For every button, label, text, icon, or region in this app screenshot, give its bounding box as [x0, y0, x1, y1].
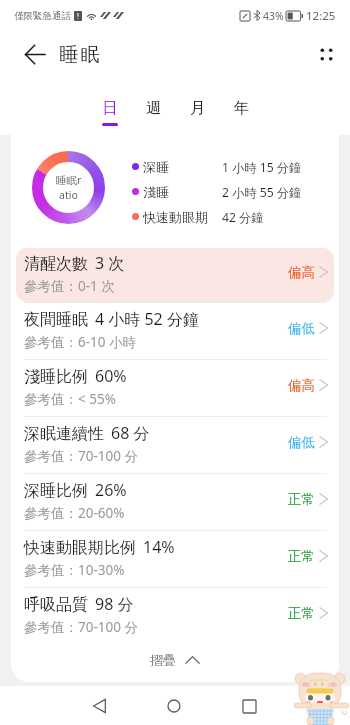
- staticText: 深眠連續性: [24, 424, 104, 444]
- button[interactable]: Home: [157, 689, 191, 723]
- staticText: 正常: [288, 491, 315, 508]
- staticText: 2 小時 55 分鐘: [222, 184, 302, 199]
- staticText: 4 小時 52 分鐘: [95, 308, 199, 330]
- staticText: 參考值：20-60%: [24, 504, 125, 522]
- button[interactable]: 夜間睡眠: [16, 303, 334, 359]
- staticText: 快速動眼期: [143, 209, 208, 224]
- staticText: 參考值：70-100 分: [24, 618, 138, 636]
- staticText: 43%: [263, 9, 284, 23]
- staticText: 98 分: [95, 593, 134, 615]
- staticText: 清醒次數: [24, 254, 88, 274]
- staticText: 68 分: [111, 422, 150, 444]
- staticText: 參考值：6-10 小時: [24, 333, 137, 351]
- staticText: 週: [146, 98, 162, 118]
- staticText: 42 分鐘: [222, 209, 264, 224]
- staticText: 偏高: [288, 264, 315, 281]
- button[interactable]: 深眠連續性: [16, 417, 334, 473]
- button[interactable]: 摺疊: [11, 644, 339, 676]
- staticText: 參考值：70-100 分: [24, 447, 138, 465]
- staticText: 日: [102, 98, 118, 118]
- button[interactable]: 深睡比例: [16, 474, 334, 530]
- button[interactable]: 日: [88, 78, 132, 135]
- staticText: 參考值：10-30%: [24, 561, 125, 579]
- staticText: 參考值：0-1 次: [24, 277, 115, 295]
- staticText: 年: [234, 98, 250, 118]
- staticText: 深睡: [143, 159, 169, 174]
- staticText: 睡眠: [58, 43, 101, 67]
- button[interactable]: 呼吸品質: [16, 588, 334, 644]
- staticText: 睡眠r: [56, 173, 82, 187]
- button[interactable]: Recents: [232, 689, 266, 723]
- button[interactable]: 年: [220, 78, 264, 135]
- button[interactable]: Back: [82, 689, 116, 723]
- staticText: 偏低: [288, 434, 315, 451]
- staticText: 月: [190, 98, 206, 118]
- staticText: 60%: [95, 365, 127, 387]
- staticText: 1 小時 15 分鐘: [222, 159, 302, 174]
- staticText: 偏低: [288, 320, 315, 337]
- staticText: 偏高: [288, 377, 315, 394]
- staticText: 參考值：< 55%: [24, 390, 116, 408]
- button[interactable]: 快速動眼期比例: [16, 531, 334, 587]
- staticText: 深睡比例: [24, 481, 88, 501]
- staticText: atio: [59, 188, 78, 202]
- staticText: 正常: [288, 548, 315, 565]
- button[interactable]: Back: [0, 31, 48, 78]
- staticText: 摺疊: [150, 652, 176, 668]
- staticText: 正常: [288, 605, 315, 622]
- staticText: 呼吸品質: [24, 595, 88, 615]
- staticText: 快速動眼期比例: [24, 538, 136, 558]
- staticText: 淺睡比例: [24, 367, 88, 387]
- staticText: 淺睡: [143, 184, 169, 199]
- button[interactable]: 淺睡比例: [16, 360, 334, 416]
- staticText: 14%: [143, 536, 175, 558]
- button[interactable]: More options: [303, 31, 350, 78]
- staticText: 12:25: [306, 8, 336, 24]
- staticText: 夜間睡眠: [24, 310, 88, 330]
- staticText: 3 次: [95, 252, 125, 274]
- button[interactable]: 月: [176, 78, 220, 135]
- button[interactable]: 清醒次數: [16, 248, 334, 302]
- staticText: 26%: [95, 479, 127, 501]
- button[interactable]: 週: [132, 78, 176, 135]
- staticText: 僅限緊急通話: [14, 10, 71, 22]
